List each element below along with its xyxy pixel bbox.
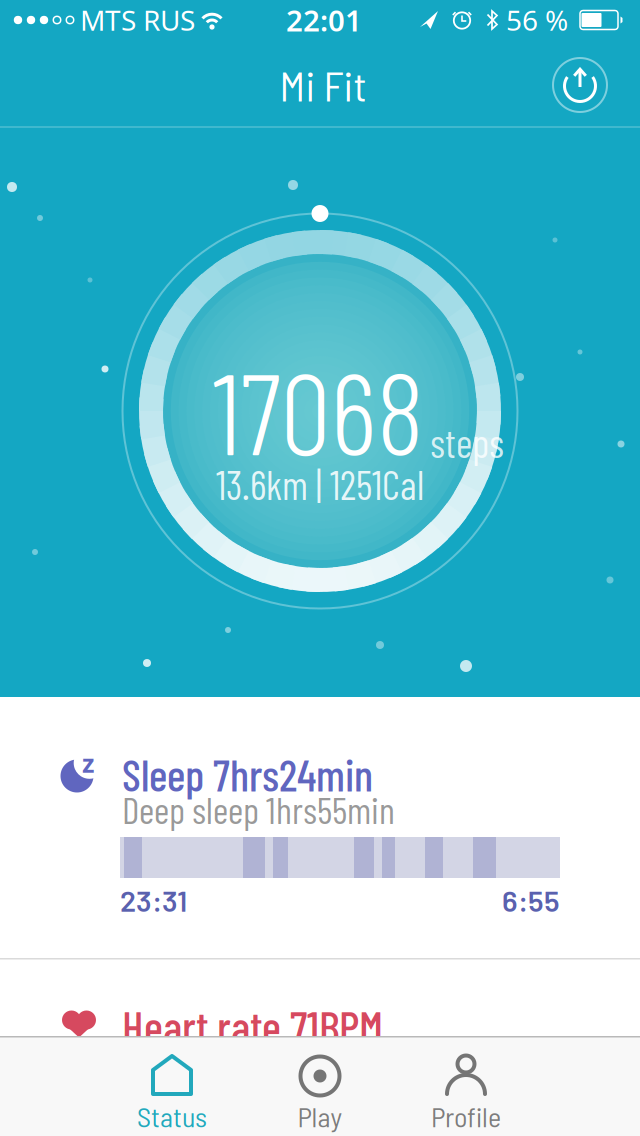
button[interactable]: Profile bbox=[376, 1036, 556, 1136]
button[interactable]: Heart rate 71BPM bbox=[0, 958, 640, 1058]
staticText: 22:01 bbox=[286, 0, 362, 39]
staticText: Sleep 7hrs24min bbox=[122, 748, 373, 800]
button[interactable]: z bbox=[0, 697, 640, 958]
staticText: Status bbox=[137, 1099, 207, 1133]
staticText: 6:55 bbox=[502, 882, 560, 918]
staticText: steps bbox=[430, 418, 504, 466]
button[interactable]: Play bbox=[230, 1036, 410, 1136]
staticText: 23:31 bbox=[120, 882, 187, 918]
staticText: 13.6km | 1251Cal bbox=[216, 460, 424, 508]
staticText: Heart rate 71BPM bbox=[122, 999, 383, 1053]
button[interactable]: Status bbox=[82, 1036, 262, 1136]
staticText: 17068 bbox=[212, 342, 423, 478]
staticText: Mi Fit bbox=[279, 60, 366, 110]
staticText: Play bbox=[297, 1099, 342, 1133]
staticText: z bbox=[82, 746, 94, 780]
staticText: Deep sleep 1hrs55min bbox=[122, 787, 395, 831]
staticText: 56 % bbox=[506, 1, 568, 39]
staticText: Profile bbox=[431, 1099, 501, 1133]
staticText: MTS RUS bbox=[80, 1, 195, 39]
button[interactable]: Sync bbox=[551, 56, 609, 114]
